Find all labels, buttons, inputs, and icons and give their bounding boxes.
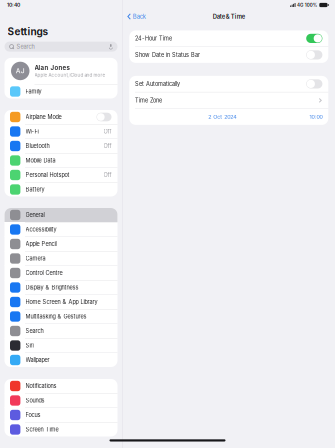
- button[interactable]: Set Automatically: [129, 76, 328, 92]
- button[interactable]: [4, 353, 117, 367]
- staticText: Search: [16, 43, 34, 50]
- staticText: Display & Brightness: [25, 284, 78, 291]
- staticText: Apple Account, iCloud and more: [34, 73, 105, 78]
- button[interactable]: [4, 295, 117, 309]
- button[interactable]: [4, 266, 117, 280]
- button[interactable]: [4, 124, 117, 138]
- staticText: Bluetooth: [25, 143, 49, 149]
- staticText: Off: [103, 128, 111, 135]
- staticText: Camera: [25, 255, 45, 262]
- staticText: Home Screen & App Library: [25, 299, 97, 305]
- staticText: Battery: [25, 186, 44, 193]
- staticText: Screen Time: [25, 426, 58, 433]
- staticText: Date & Time: [213, 13, 245, 20]
- staticText: Focus: [25, 412, 40, 418]
- button[interactable]: [4, 222, 117, 236]
- staticText: Notifications: [25, 383, 56, 389]
- staticText: Search: [25, 328, 43, 334]
- button[interactable]: [4, 208, 117, 222]
- button[interactable]: [4, 110, 117, 124]
- staticText: Mobile Data: [25, 157, 55, 164]
- button[interactable]: 2 Oct 2024: [129, 109, 328, 125]
- staticText: Personal Hotspot: [25, 172, 69, 178]
- button[interactable]: [4, 139, 117, 153]
- button[interactable]: Show Date in Status Bar: [129, 47, 328, 63]
- button[interactable]: Back: [127, 11, 146, 22]
- button[interactable]: [4, 84, 117, 98]
- staticText: 4G: [297, 2, 303, 8]
- staticText: 100%: [305, 2, 318, 8]
- staticText: General: [25, 212, 44, 218]
- staticText: Wallpaper: [25, 357, 49, 363]
- button[interactable]: [4, 182, 117, 196]
- button[interactable]: [4, 422, 117, 436]
- button[interactable]: [4, 338, 117, 352]
- button[interactable]: [4, 280, 117, 294]
- staticText: Sounds: [25, 397, 44, 404]
- staticText: Alan Jones: [34, 64, 69, 71]
- staticText: AJ: [16, 67, 25, 75]
- button[interactable]: [4, 408, 117, 422]
- staticText: 2 Oct 2024: [208, 114, 236, 120]
- staticText: 10:40: [7, 2, 20, 8]
- button[interactable]: [4, 324, 117, 338]
- button[interactable]: 24-Hour Time: [129, 30, 328, 46]
- staticText: Airplane Mode: [25, 114, 61, 120]
- button[interactable]: [4, 237, 117, 251]
- button[interactable]: [4, 251, 117, 265]
- button[interactable]: [4, 153, 117, 167]
- staticText: Apple Pencil: [25, 241, 56, 247]
- staticText: 10:00: [309, 114, 322, 120]
- staticText: Off: [103, 143, 111, 149]
- staticText: Siri: [25, 342, 33, 349]
- staticText: 24-Hour Time: [135, 35, 172, 42]
- button[interactable]: [4, 393, 117, 407]
- staticText: Multitasking & Gestures: [25, 313, 86, 320]
- button[interactable]: [4, 379, 117, 393]
- staticText: Accessibility: [25, 226, 56, 233]
- staticText: Set Automatically: [135, 81, 180, 87]
- button[interactable]: AJ: [4, 58, 117, 84]
- button[interactable]: [4, 168, 117, 182]
- button[interactable]: Time Zone: [129, 92, 328, 108]
- staticText: Settings: [7, 25, 48, 38]
- staticText: Control Centre: [25, 270, 62, 276]
- button[interactable]: [4, 309, 117, 323]
- staticText: Wi-Fi: [25, 128, 38, 135]
- staticText: Back: [133, 13, 146, 20]
- staticText: Show Date in Status Bar: [135, 52, 200, 58]
- staticText: Time Zone: [135, 97, 162, 104]
- staticText: Off: [103, 172, 111, 178]
- staticText: Family: [25, 88, 41, 95]
